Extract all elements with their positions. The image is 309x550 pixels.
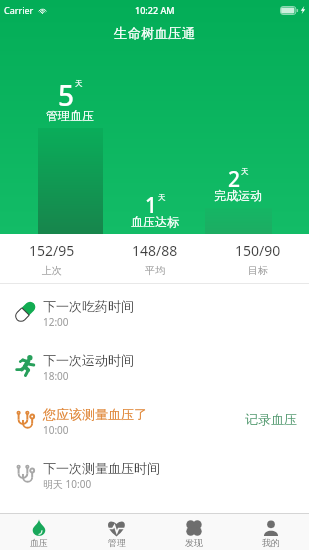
staticText: 5 xyxy=(58,76,75,114)
staticText: 发现 xyxy=(185,537,203,548)
staticText: 10:22 AM xyxy=(135,4,175,16)
staticText: 10:00 xyxy=(43,423,69,437)
staticText: 150/90 xyxy=(235,241,281,260)
button[interactable]: 记录血压 xyxy=(233,403,309,435)
button[interactable]: 150/90 xyxy=(206,234,309,283)
staticText: 天 xyxy=(241,167,249,176)
staticText: 明天 10:00 xyxy=(43,477,92,491)
button[interactable]: 下一次吃药时间 xyxy=(0,284,309,338)
staticText: 12:00 xyxy=(43,315,69,329)
staticText: 血压 xyxy=(30,537,48,548)
staticText: 管理血压 xyxy=(46,108,94,123)
staticText: 1 xyxy=(145,191,158,220)
staticText: 完成运动 xyxy=(214,188,262,203)
staticText: 目标 xyxy=(248,264,268,277)
staticText: 您应该测量血压了 xyxy=(43,406,147,422)
button[interactable]: 管理 xyxy=(78,514,155,550)
staticText: 152/95 xyxy=(29,241,75,260)
staticText: 记录血压 xyxy=(245,411,297,427)
staticText: 管理 xyxy=(108,537,126,548)
button[interactable]: 我的 xyxy=(232,514,309,550)
staticText: 平均 xyxy=(145,264,165,277)
staticText: 天 xyxy=(75,79,83,88)
button[interactable]: 下一次运动时间 xyxy=(0,338,309,392)
button[interactable]: 您应该测量血压了 xyxy=(0,392,309,446)
staticText: 血压达标 xyxy=(131,214,179,229)
button[interactable]: 148/88 xyxy=(103,234,206,283)
button[interactable]: 152/95 xyxy=(0,234,103,283)
staticText: 上次 xyxy=(42,264,62,277)
staticText: 下一次运动时间 xyxy=(43,352,134,368)
button[interactable]: 下一次测量血压时间 xyxy=(0,446,309,500)
staticText: 18:00 xyxy=(43,369,69,383)
staticText: 2 xyxy=(228,165,241,194)
button[interactable]: 血压 xyxy=(0,514,78,550)
staticText: Carrier xyxy=(4,4,34,16)
button[interactable]: 发现 xyxy=(155,514,232,550)
staticText: 我的 xyxy=(262,537,280,548)
staticText: 下一次吃药时间 xyxy=(43,298,134,314)
staticText: 下一次测量血压时间 xyxy=(43,460,160,476)
staticText: 天 xyxy=(158,193,166,202)
staticText: 148/88 xyxy=(132,241,178,260)
staticText: 生命树血压通 xyxy=(114,25,195,42)
